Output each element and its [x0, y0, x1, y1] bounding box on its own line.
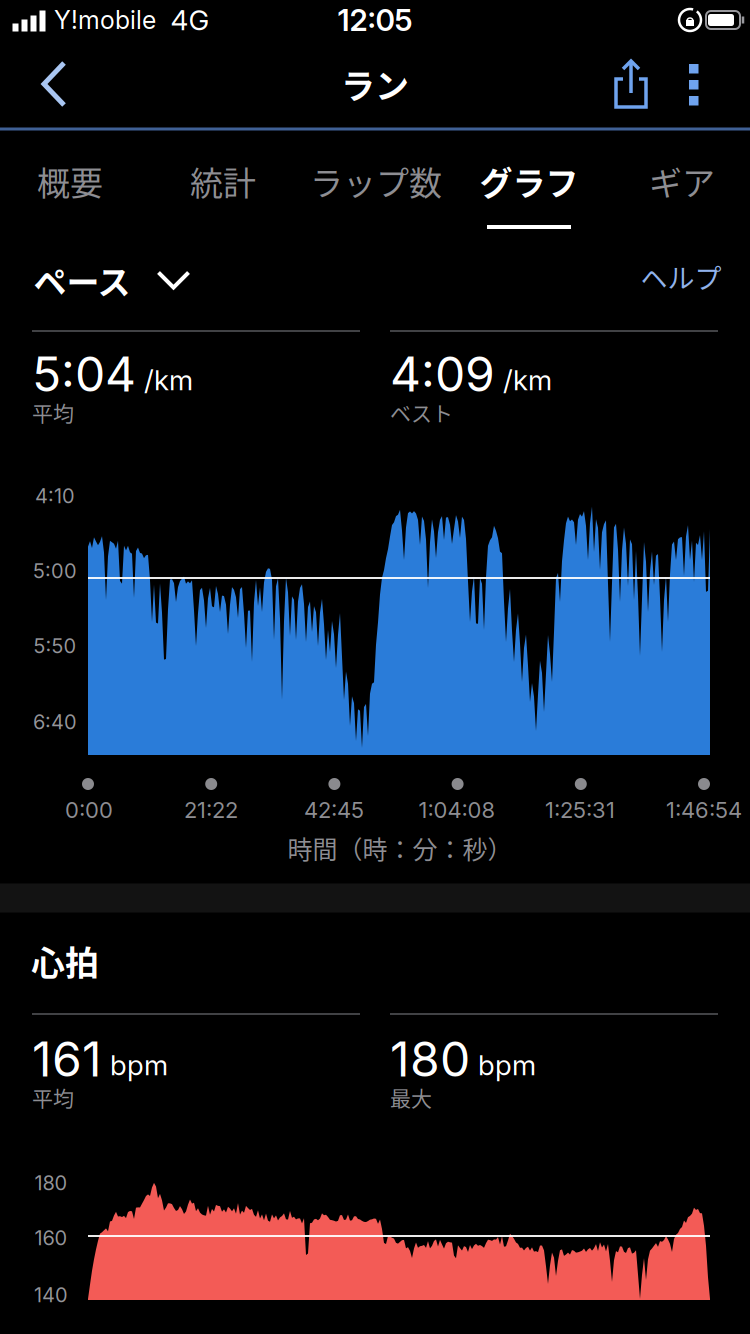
button[interactable]: Share — [606, 51, 656, 117]
staticText: 6:40 — [33, 710, 77, 734]
staticText: ギア — [649, 157, 715, 205]
staticText: 1:04:08 — [418, 797, 495, 823]
button[interactable]: グラフ — [452, 131, 605, 231]
staticText: /km — [144, 363, 193, 397]
staticText: 1:25:31 — [545, 797, 615, 823]
staticText: 時間（時：分：秒） — [287, 830, 512, 866]
button[interactable]: ヘルプ — [640, 257, 721, 297]
staticText: ヘルプ — [640, 257, 721, 297]
staticText: 5:50 — [33, 634, 76, 658]
staticText: 21:22 — [184, 797, 238, 823]
staticText: 心拍 — [31, 936, 99, 986]
staticText: Y!mobile — [54, 5, 156, 35]
staticText: 統計 — [190, 157, 256, 205]
staticText: 4G — [170, 3, 209, 37]
staticText: ベスト — [390, 397, 453, 427]
staticText: 160 — [34, 1226, 67, 1250]
button[interactable]: 概要 — [0, 131, 146, 231]
staticText: ラン — [341, 59, 409, 109]
staticText: 0:00 — [65, 797, 113, 823]
staticText: 12:05 — [337, 2, 412, 38]
button[interactable]: ラップ数 — [299, 131, 452, 231]
staticText: グラフ — [479, 157, 578, 205]
staticText: ラップ数 — [310, 157, 442, 205]
button[interactable]: 統計 — [146, 131, 299, 231]
staticText: 42:45 — [304, 797, 364, 823]
staticText: 161 — [32, 1030, 102, 1088]
staticText: 平均 — [32, 1082, 74, 1112]
staticText: /km — [503, 363, 552, 397]
staticText: 1:46:54 — [666, 797, 742, 823]
staticText: 4:09 — [390, 345, 495, 403]
staticText: bpm — [478, 1048, 536, 1082]
staticText: ペース — [33, 256, 130, 304]
staticText: 140 — [34, 1283, 68, 1307]
button[interactable]: More options — [679, 54, 709, 116]
staticText: 5:04 — [32, 345, 136, 403]
staticText: 180 — [390, 1030, 470, 1088]
button[interactable]: ギア — [605, 131, 750, 231]
staticText: 概要 — [37, 157, 103, 205]
staticText: 180 — [34, 1171, 67, 1195]
staticText: 5:00 — [33, 559, 77, 583]
staticText: 平均 — [32, 397, 74, 427]
button[interactable]: Back — [30, 49, 78, 119]
staticText: 最大 — [390, 1082, 432, 1112]
button[interactable]: ペース — [33, 256, 188, 304]
staticText: bpm — [110, 1048, 168, 1082]
staticText: 4:10 — [35, 484, 75, 508]
